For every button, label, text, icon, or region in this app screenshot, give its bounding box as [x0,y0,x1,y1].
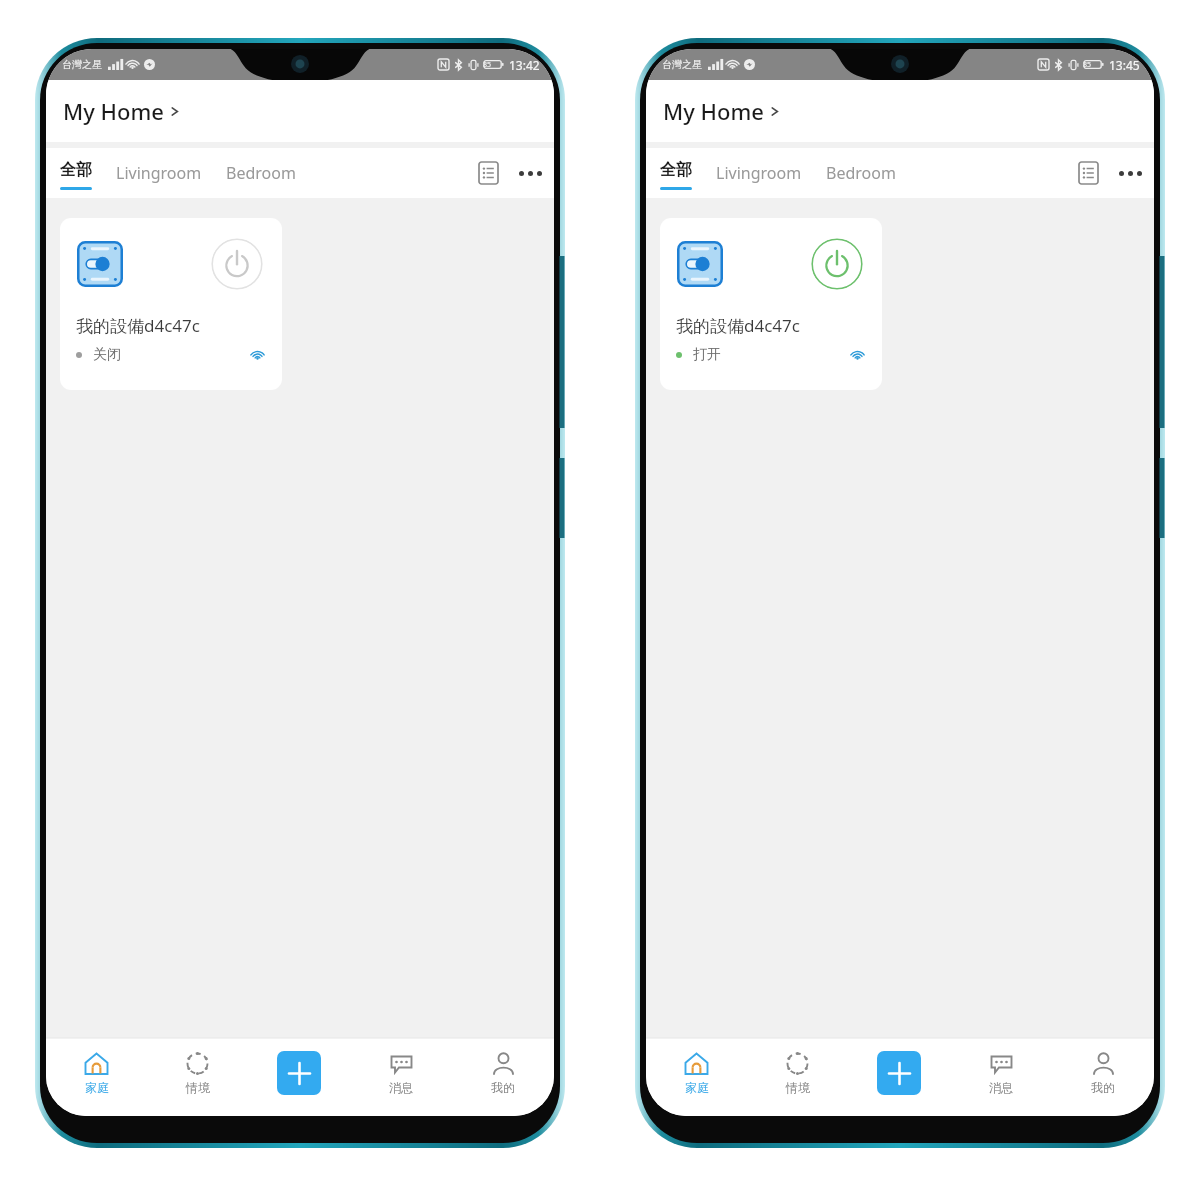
button[interactable]: Livingroom [116,148,202,198]
button[interactable]: Turn on [211,238,263,290]
button[interactable]: More options [1112,152,1148,194]
button[interactable]: 全部 [60,148,92,198]
staticText: 13:45 [1109,57,1140,73]
staticText: 我的設備d4c47c [76,314,200,337]
button[interactable]: 消息 [350,1044,452,1102]
staticText: Livingroom [116,162,202,184]
staticText: 我的 [491,1080,515,1095]
staticText: 全部 [660,160,692,180]
staticText: 台灣之星 [62,58,102,71]
staticText: 全部 [60,160,92,180]
staticText: 家庭 [85,1080,109,1095]
staticText: 打开 [693,346,721,364]
button[interactable]: Add device [877,1051,921,1095]
staticText: 85 [483,60,492,70]
button[interactable]: More options [512,152,548,194]
staticText: My Home [63,96,164,126]
staticText: Bedroom [826,162,896,184]
button[interactable]: Turn off [811,238,863,290]
button[interactable]: Bedroom [826,148,896,198]
staticText: 我的 [1091,1080,1115,1095]
button[interactable]: 我的 [1052,1044,1154,1102]
button[interactable]: My Home [63,96,179,126]
button[interactable]: 我的 [452,1044,554,1102]
staticText: 台灣之星 [662,58,702,71]
staticText: 13:42 [509,57,540,73]
button[interactable]: 情境 [747,1044,848,1102]
button[interactable]: Turn on [60,218,282,390]
button[interactable]: Livingroom [716,148,802,198]
button[interactable]: 全部 [660,148,692,198]
staticText: Bedroom [226,162,296,184]
button[interactable]: List view [1068,153,1108,193]
button[interactable]: Bedroom [226,148,296,198]
staticText: 情境 [786,1080,810,1095]
button[interactable]: My Home [663,96,779,126]
staticText: My Home [663,96,764,126]
button[interactable]: 家庭 [646,1044,747,1102]
button[interactable]: List view [468,153,508,193]
staticText: 关闭 [93,346,121,364]
button[interactable]: 情境 [147,1044,248,1102]
staticText: 家庭 [685,1080,709,1095]
staticText: 消息 [989,1080,1013,1095]
button[interactable]: 消息 [950,1044,1052,1102]
staticText: 消息 [389,1080,413,1095]
staticText: 85 [1083,60,1092,70]
staticText: Livingroom [716,162,802,184]
button[interactable]: 家庭 [46,1044,147,1102]
staticText: 我的設備d4c47c [676,314,800,337]
staticText: 情境 [186,1080,210,1095]
button[interactable]: Turn off [660,218,882,390]
button[interactable]: Add device [277,1051,321,1095]
